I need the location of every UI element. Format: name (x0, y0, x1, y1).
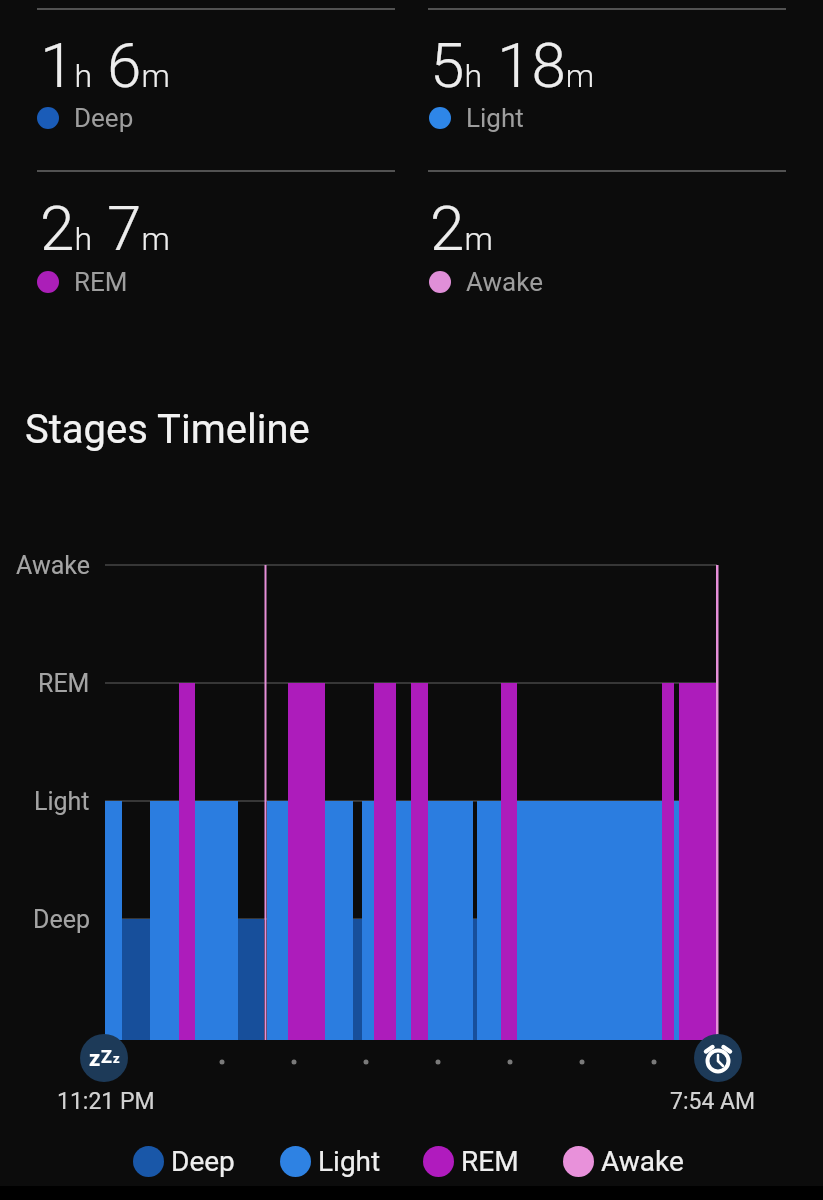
staticText: Deep (33, 905, 90, 934)
button[interactable]: Light (429, 102, 524, 134)
staticText: Awake (601, 1145, 684, 1177)
staticText: z (89, 1046, 101, 1072)
button[interactable] (37, 8, 395, 163)
button[interactable] (37, 170, 395, 325)
staticText: Light (34, 787, 90, 816)
staticText: Stages Timeline (25, 406, 310, 453)
staticText: REM (461, 1145, 519, 1177)
button[interactable]: REM (37, 266, 128, 298)
staticText: REM (38, 669, 90, 698)
staticText: 2m (430, 192, 493, 265)
staticText: 7:54 AM (670, 1088, 756, 1115)
staticText: z (113, 1051, 120, 1066)
button[interactable]: Awake (563, 1145, 684, 1177)
staticText: 5h 18m (430, 29, 595, 102)
staticText: Awake (466, 267, 543, 297)
staticText: Deep (74, 103, 134, 133)
button[interactable]: Light (280, 1145, 381, 1177)
button[interactable] (428, 170, 786, 325)
button[interactable] (428, 8, 786, 163)
button[interactable]: REM (423, 1145, 519, 1177)
staticText: Light (318, 1145, 381, 1177)
staticText: 11:21 PM (57, 1088, 155, 1115)
staticText: Z (101, 1046, 112, 1067)
staticText: Deep (171, 1145, 235, 1177)
staticText: 2h 7m (40, 192, 170, 265)
staticText: REM (74, 267, 128, 297)
staticText: Light (466, 103, 524, 133)
button[interactable]: Awake (429, 266, 543, 298)
button[interactable]: Deep (37, 102, 134, 134)
staticText: Awake (16, 551, 90, 580)
staticText: 1h 6m (40, 29, 170, 102)
button[interactable]: Deep (133, 1145, 235, 1177)
